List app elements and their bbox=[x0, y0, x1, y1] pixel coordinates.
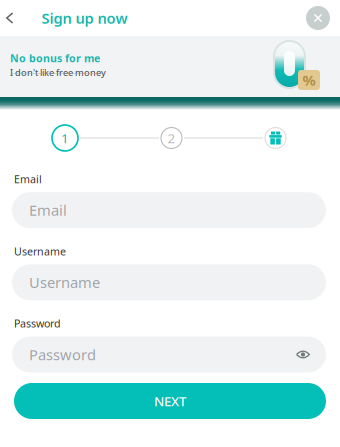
staticText: Password bbox=[29, 345, 96, 364]
staticText: % bbox=[302, 70, 315, 90]
button[interactable]: NEXT bbox=[14, 383, 326, 419]
staticText: I don't like free money bbox=[10, 66, 106, 79]
staticText: No bonus for me bbox=[10, 51, 100, 65]
staticText: Sign up now bbox=[41, 8, 127, 28]
button[interactable]: Back bbox=[0, 0, 19, 36]
staticText: Username bbox=[29, 273, 100, 292]
staticText: NEXT bbox=[154, 392, 186, 410]
button[interactable]: Show password bbox=[290, 349, 310, 359]
staticText: Email bbox=[14, 172, 42, 186]
staticText: 2 bbox=[167, 129, 175, 147]
staticText: Email bbox=[29, 200, 67, 220]
staticText: Password bbox=[14, 316, 61, 330]
staticText: 1 bbox=[61, 129, 69, 147]
staticText: Username bbox=[14, 244, 66, 258]
button[interactable]: Close bbox=[306, 0, 340, 36]
